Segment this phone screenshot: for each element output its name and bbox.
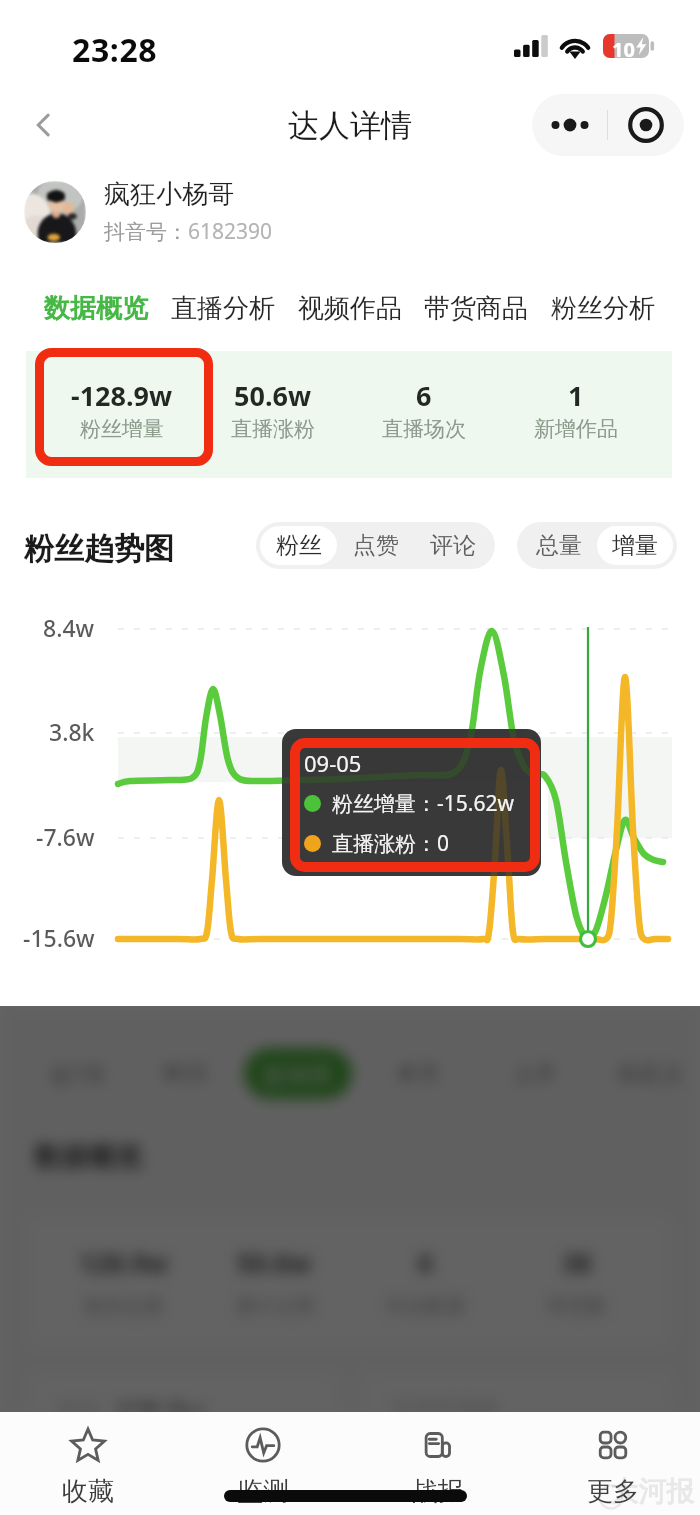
staticText: 23:28 — [72, 28, 158, 72]
staticText: 数据概览 — [44, 292, 148, 325]
staticText: -15.62w — [437, 789, 514, 818]
staticText: -15.6w — [23, 922, 95, 953]
staticText: 128.9w — [79, 1245, 169, 1280]
button[interactable]: 总量 — [521, 526, 597, 565]
staticText: 战报 — [412, 1475, 464, 1508]
staticText: 监测 — [237, 1475, 289, 1508]
button[interactable]: 50.6w — [197, 377, 348, 442]
button[interactable]: 昨日 — [157, 1048, 215, 1099]
button[interactable]: 点赞 — [337, 526, 414, 565]
button[interactable]: 自定义 — [609, 1048, 691, 1099]
staticText: 点赞 — [353, 531, 399, 560]
staticText: 10 — [612, 36, 635, 63]
button[interactable]: 带货商品 — [424, 292, 528, 325]
staticText: 数据概览 — [34, 1140, 142, 1174]
button[interactable]: 近30天 — [244, 1048, 352, 1099]
button[interactable]: 视频作品 — [298, 292, 402, 325]
staticText: 粉丝增量： — [332, 791, 437, 817]
staticText: 更多 — [587, 1475, 639, 1508]
button[interactable]: 监测 — [175, 1412, 350, 1515]
button[interactable]: 数据概览 — [44, 292, 148, 325]
staticText: 6182390 — [188, 217, 273, 246]
staticText: 6 — [418, 1245, 433, 1280]
staticText: 直播涨粉 — [231, 416, 315, 442]
staticText: 1 — [568, 377, 584, 414]
staticText: 128.9w — [116, 1394, 206, 1412]
staticText: 带货商品 — [424, 292, 528, 325]
staticText: 评论 — [430, 531, 476, 560]
staticText: 总量 — [536, 531, 582, 560]
staticText: 视频作品 — [298, 292, 402, 325]
staticText: 50.6w — [234, 377, 312, 414]
staticText: 粉丝增量 — [80, 416, 164, 442]
staticText: 直播分析 — [171, 292, 275, 325]
button[interactable]: 本月 — [389, 1048, 447, 1099]
staticText: 直播涨粉： — [332, 831, 437, 857]
staticText: 50.6w — [237, 1245, 312, 1280]
staticText: 疯狂小杨哥 — [104, 178, 234, 211]
button[interactable]: -128.9w — [46, 377, 197, 442]
button[interactable]: 6 — [348, 377, 500, 442]
staticText: 抖音号： — [104, 219, 188, 245]
staticText: 新增作品 — [534, 416, 618, 442]
button[interactable]: Close mini program — [608, 94, 684, 156]
staticText: 达人详情 — [288, 106, 412, 145]
staticText: 8.4w — [43, 612, 95, 643]
staticText: 6 — [416, 377, 432, 414]
staticText: -7.6w — [36, 821, 95, 852]
button[interactable]: More options — [532, 94, 607, 156]
staticText: 3.8k — [49, 716, 95, 747]
button[interactable]: 增量 — [597, 526, 673, 565]
staticText: -128.9w — [71, 377, 173, 414]
button[interactable]: 1 — [500, 377, 652, 442]
button[interactable]: 收藏 — [0, 1412, 175, 1515]
staticText: 收藏 — [62, 1475, 114, 1508]
staticText: 粉丝 — [276, 531, 322, 560]
staticText: 0 — [437, 829, 450, 858]
staticText: 直播场次 — [382, 416, 466, 442]
staticText: 增量 — [612, 531, 658, 560]
staticText: 09-05 — [304, 748, 362, 778]
staticText: 粉丝趋势图 — [24, 530, 174, 568]
staticText: 38 — [562, 1245, 592, 1280]
button[interactable]: 战报 — [350, 1412, 525, 1515]
staticText: 粉丝分析 — [551, 292, 655, 325]
button[interactable]: 粉丝分析 — [551, 292, 655, 325]
button[interactable]: 更多 — [525, 1412, 700, 1515]
button[interactable]: 粉丝 — [260, 526, 337, 565]
button[interactable]: 直播分析 — [171, 292, 275, 325]
button[interactable]: 评论 — [414, 526, 491, 565]
button[interactable]: 近7天 — [37, 1048, 119, 1099]
button[interactable]: Back — [20, 101, 68, 149]
staticText: 近30天 — [263, 1059, 333, 1089]
staticText: 大河报 — [610, 1474, 694, 1509]
